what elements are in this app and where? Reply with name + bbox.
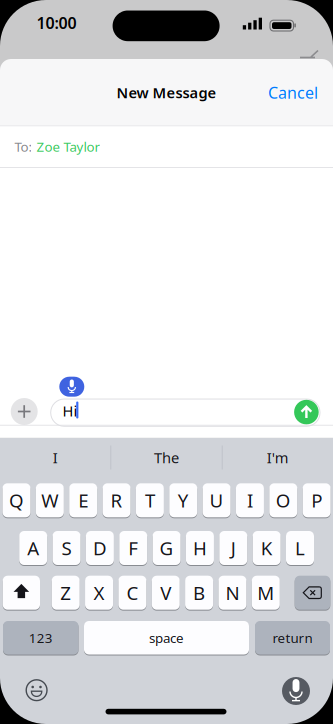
button[interactable]: [282, 677, 310, 705]
button[interactable]: J: [219, 531, 247, 566]
button[interactable]: Q: [2, 483, 30, 518]
staticText: O: [276, 488, 291, 513]
staticText: space: [149, 629, 184, 647]
button[interactable]: F: [119, 531, 147, 566]
button[interactable]: S: [52, 531, 80, 566]
staticText: G: [160, 536, 174, 560]
staticText: J: [231, 536, 236, 560]
staticText: X: [94, 580, 105, 605]
staticText: C: [126, 580, 138, 605]
staticText: I: [247, 488, 253, 513]
button[interactable]: [26, 680, 47, 701]
button[interactable]: K: [253, 531, 281, 566]
button[interactable]: Z: [52, 576, 80, 611]
button[interactable]: return: [255, 621, 330, 655]
button[interactable]: O: [269, 483, 297, 518]
button[interactable]: Y: [169, 483, 197, 518]
button[interactable]: I: [0, 438, 110, 477]
staticText: D: [93, 536, 107, 560]
button[interactable]: D: [86, 531, 114, 566]
button[interactable]: B: [185, 576, 213, 611]
button[interactable]: R: [103, 483, 131, 518]
button[interactable]: space: [84, 621, 249, 655]
button[interactable]: [295, 576, 330, 611]
button[interactable]: [294, 400, 319, 424]
button[interactable]: G: [153, 531, 181, 566]
staticText: T: [145, 488, 155, 513]
button[interactable]: T: [136, 483, 164, 518]
staticText: M: [257, 580, 274, 605]
staticText: The: [154, 448, 179, 467]
staticText: N: [225, 580, 239, 605]
button[interactable]: 123: [3, 621, 78, 655]
button[interactable]: [3, 576, 40, 611]
button[interactable]: To:: [0, 126, 333, 167]
button[interactable]: The: [111, 438, 222, 477]
staticText: U: [210, 488, 224, 513]
button[interactable]: U: [203, 483, 231, 518]
button[interactable]: X: [85, 576, 113, 611]
button[interactable]: P: [303, 483, 331, 518]
button[interactable]: M: [252, 576, 280, 611]
staticText: 10:00: [36, 12, 76, 33]
staticText: K: [261, 536, 273, 560]
button[interactable]: I: [236, 483, 264, 518]
button[interactable]: A: [19, 531, 47, 566]
staticText: S: [61, 536, 71, 560]
staticText: B: [193, 580, 205, 605]
staticText: E: [78, 488, 88, 513]
staticText: 123: [29, 629, 53, 647]
button[interactable]: Cancel: [0, 59, 333, 126]
staticText: I: [53, 448, 58, 467]
button[interactable]: C: [118, 576, 146, 611]
staticText: H: [193, 536, 207, 560]
staticText: To:: [14, 138, 32, 155]
button[interactable]: H: [186, 531, 214, 566]
staticText: Z: [60, 580, 71, 605]
staticText: F: [128, 536, 138, 560]
staticText: L: [295, 536, 305, 560]
staticText: Cancel: [268, 82, 318, 103]
button[interactable]: [11, 398, 38, 425]
button[interactable]: V: [152, 576, 180, 611]
staticText: P: [311, 488, 322, 513]
staticText: Zoe Taylor: [36, 138, 100, 155]
button[interactable]: L: [286, 531, 314, 566]
staticText: Y: [178, 488, 189, 513]
staticText: W: [41, 488, 58, 513]
button[interactable]: W: [36, 483, 64, 518]
button[interactable]: N: [218, 576, 246, 611]
staticText: New Message: [116, 83, 216, 102]
staticText: Q: [9, 488, 24, 513]
staticText: Hi: [62, 401, 77, 421]
button[interactable]: [59, 377, 84, 397]
staticText: return: [272, 629, 312, 647]
staticText: I'm: [267, 448, 289, 467]
staticText: A: [27, 536, 39, 560]
staticText: R: [111, 488, 123, 513]
button[interactable]: I'm: [223, 438, 333, 477]
button[interactable]: E: [69, 483, 97, 518]
staticText: V: [160, 580, 171, 605]
